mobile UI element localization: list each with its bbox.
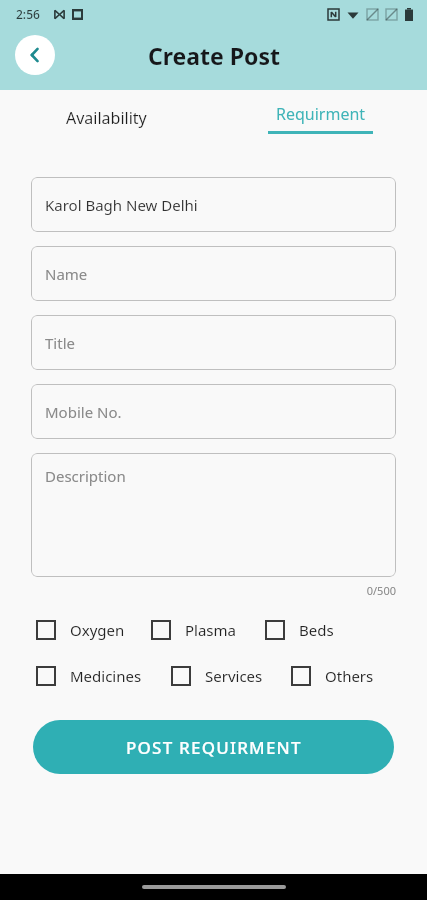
- button[interactable]: Karol Bagh New Delhi: [31, 177, 396, 232]
- button[interactable]: Others: [292, 666, 374, 686]
- staticText: Medicines: [70, 666, 142, 686]
- button[interactable]: Title: [31, 315, 396, 370]
- button[interactable]: Requirment: [213, 90, 427, 146]
- staticText: Beds: [299, 620, 334, 640]
- staticText: POST REQUIRMENT: [126, 736, 302, 759]
- staticText: Name: [45, 264, 88, 284]
- staticText: Availability: [66, 107, 147, 129]
- button[interactable]: POST REQUIRMENT: [33, 720, 394, 774]
- button[interactable]: Plasma: [152, 620, 266, 640]
- staticText: Oxygen: [70, 620, 125, 640]
- staticText: 2:56: [16, 6, 40, 22]
- button[interactable]: Medicines: [37, 666, 172, 686]
- staticText: Description: [45, 466, 126, 486]
- button[interactable]: Description: [31, 453, 396, 577]
- staticText: Title: [45, 333, 75, 353]
- button[interactable]: Mobile No.: [31, 384, 396, 439]
- staticText: Requirment: [276, 103, 366, 125]
- button[interactable]: Oxygen: [37, 620, 152, 640]
- button[interactable]: Beds: [266, 620, 334, 640]
- staticText: Services: [205, 666, 263, 686]
- button[interactable]: Services: [172, 666, 292, 686]
- staticText: Create Post: [148, 40, 280, 71]
- staticText: Others: [325, 666, 374, 686]
- staticText: Mobile No.: [45, 402, 122, 422]
- button[interactable]: Back: [15, 35, 55, 75]
- staticText: 0/500: [31, 583, 396, 598]
- staticText: Plasma: [185, 620, 236, 640]
- button[interactable]: Availability: [0, 90, 213, 146]
- button[interactable]: Name: [31, 246, 396, 301]
- staticText: Karol Bagh New Delhi: [45, 195, 198, 215]
